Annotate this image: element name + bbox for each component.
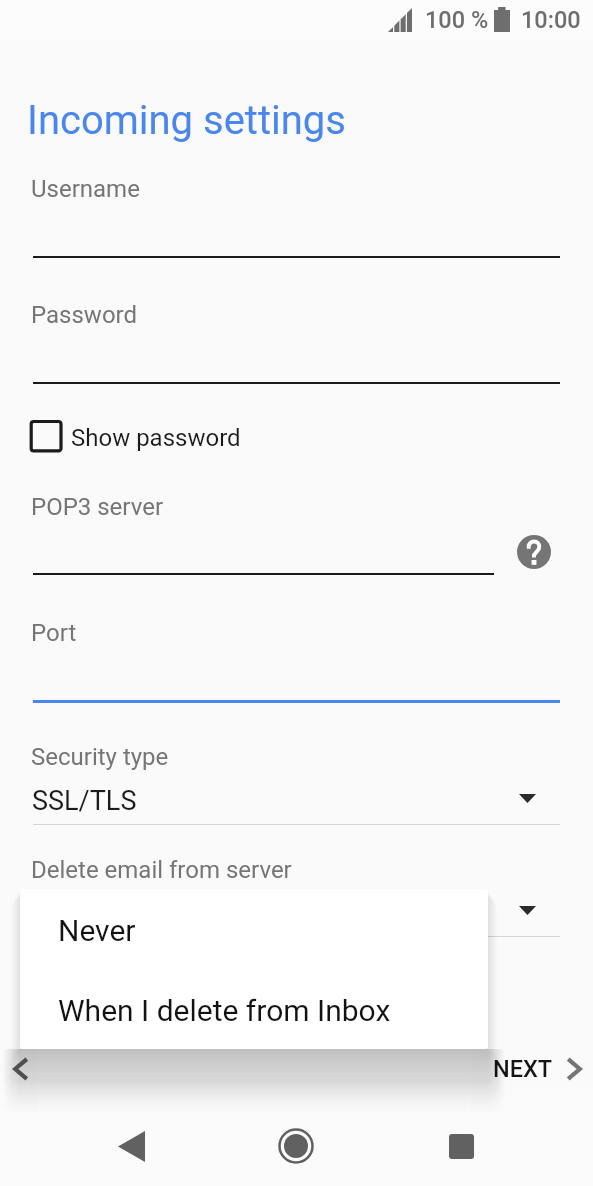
staticText: Password [31, 301, 138, 329]
button[interactable] [0, 470, 593, 580]
button[interactable] [0, 596, 593, 706]
button[interactable] [0, 276, 593, 392]
staticText: 100 % [425, 6, 489, 34]
button[interactable]: When I delete from Inbox [20, 969, 488, 1049]
staticText: Security type [31, 743, 169, 771]
button[interactable]: Never [20, 889, 488, 969]
staticText: Delete email from server [31, 856, 292, 884]
staticText: Port [31, 619, 77, 647]
button[interactable] [0, 735, 593, 830]
staticText: Show password [71, 424, 241, 452]
button[interactable]: NEXT [493, 1043, 582, 1095]
staticText: 10:00 [521, 6, 581, 34]
button[interactable]: Back [101, 1116, 161, 1176]
button[interactable] [21, 411, 253, 463]
button[interactable]: Home [266, 1116, 326, 1176]
staticText: SSL/TLS [32, 785, 137, 817]
staticText: POP3 server [31, 493, 164, 521]
staticText: Username [31, 175, 140, 203]
staticText: Never [58, 913, 136, 948]
button[interactable] [0, 150, 593, 266]
button[interactable]: Recents [431, 1116, 491, 1176]
staticText: NEXT [493, 1055, 553, 1083]
button[interactable]: Help [511, 533, 557, 579]
staticText: When I delete from Inbox [58, 993, 391, 1028]
staticText: Incoming settings [27, 97, 346, 144]
button[interactable]: Previous [0, 1043, 44, 1095]
